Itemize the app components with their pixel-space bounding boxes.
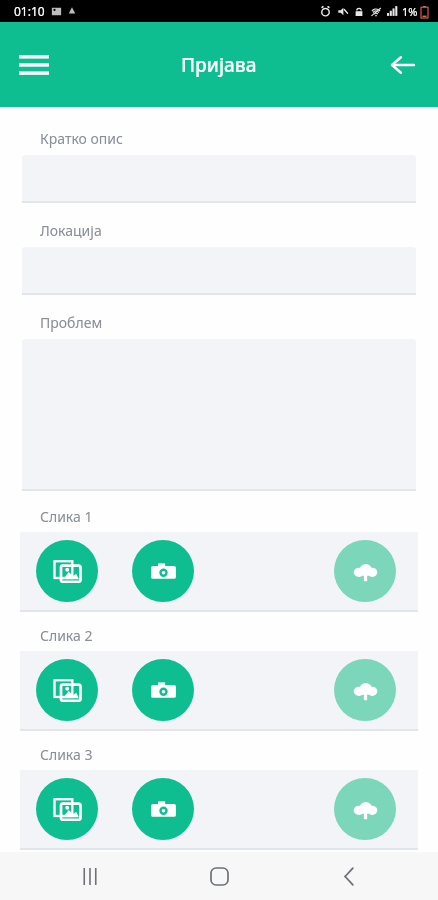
button[interactable]: Upload image (334, 778, 396, 840)
staticText: 1% (402, 4, 418, 19)
staticText: Локација (40, 221, 102, 240)
button[interactable]: Upload image (334, 659, 396, 721)
staticText: 01:10 (14, 3, 45, 19)
button[interactable]: Open navigation menu (8, 39, 60, 91)
staticText: Слика 3 (40, 745, 93, 764)
staticText: Кратко опис (40, 129, 123, 148)
staticText: Слика 1 (40, 507, 93, 526)
staticText: Пријава (181, 52, 257, 78)
button[interactable]: Recent apps (50, 852, 130, 900)
staticText: Проблем (40, 313, 103, 332)
button[interactable]: Upload image (334, 540, 396, 602)
button[interactable]: Take photo (132, 778, 194, 840)
button[interactable]: Choose from gallery (36, 778, 98, 840)
button[interactable]: Take photo (132, 540, 194, 602)
button[interactable]: Choose from gallery (36, 540, 98, 602)
button[interactable] (22, 247, 416, 295)
button[interactable]: Take photo (132, 659, 194, 721)
button[interactable]: Home (179, 852, 259, 900)
button[interactable]: Choose from gallery (36, 659, 98, 721)
button[interactable]: Back (309, 852, 389, 900)
button[interactable]: Back (378, 40, 428, 90)
button[interactable] (22, 155, 416, 203)
staticText: Слика 2 (40, 626, 93, 645)
